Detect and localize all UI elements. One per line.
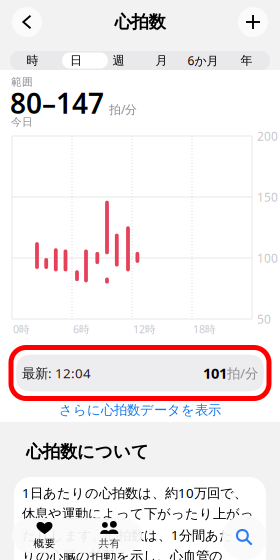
staticText: たりします。心拍数は、1分間あた (22, 526, 233, 544)
staticText: 範囲 (11, 75, 33, 88)
button[interactable]: 戻る (12, 7, 42, 37)
staticText: 拍/分 (109, 101, 137, 117)
button[interactable]: 月 (140, 51, 183, 70)
staticText: 50 (257, 311, 271, 327)
staticText: 6時 (73, 322, 90, 336)
staticText: 概要 (33, 537, 55, 550)
staticText: 心拍数 (114, 11, 165, 33)
staticText: 年 (240, 53, 252, 68)
staticText: 150 (257, 189, 278, 205)
button[interactable]: 共有 (77, 518, 142, 553)
button[interactable]: 最新: 12:04 (8, 345, 272, 401)
button[interactable]: 6か月 (183, 51, 223, 70)
staticText: 共有 (98, 537, 120, 550)
button[interactable]: 検索 (222, 515, 267, 560)
button[interactable]: 概要 (12, 518, 77, 553)
staticText: 1日あたりの心拍数は、約10万回で、 (22, 484, 247, 502)
staticText: 週 (112, 53, 124, 68)
staticText: 18時 (193, 322, 216, 336)
staticText: 最新: 12:04 (22, 364, 91, 382)
staticText: 心拍数について (26, 441, 149, 462)
button[interactable]: 年 (223, 51, 270, 70)
staticText: 101 (203, 363, 227, 383)
button[interactable]: 時 (10, 51, 55, 70)
button[interactable]: 追加 (238, 7, 268, 37)
staticText: さらに心拍数データを表示 (59, 402, 221, 418)
staticText: 拍/分 (227, 364, 258, 382)
staticText: 200 (257, 128, 278, 144)
staticText: 日 (70, 53, 82, 68)
staticText: りの心臓の拍動を示し、心血管の (22, 548, 223, 560)
staticText: 休息や運動によって下がったり上がっ (22, 506, 254, 522)
button[interactable]: さらに心拍数データを表示 (0, 403, 280, 417)
button[interactable]: 日 (55, 51, 97, 70)
staticText: 月 (155, 53, 167, 68)
button[interactable]: 週 (97, 51, 140, 70)
staticText: 12時 (133, 322, 156, 336)
staticText: 6か月 (187, 52, 218, 68)
staticText: 今日 (11, 115, 33, 128)
staticText: 0時 (13, 322, 30, 336)
staticText: 80–147 (10, 84, 104, 122)
staticText: 時 (26, 53, 38, 68)
staticText: 100 (257, 250, 278, 266)
